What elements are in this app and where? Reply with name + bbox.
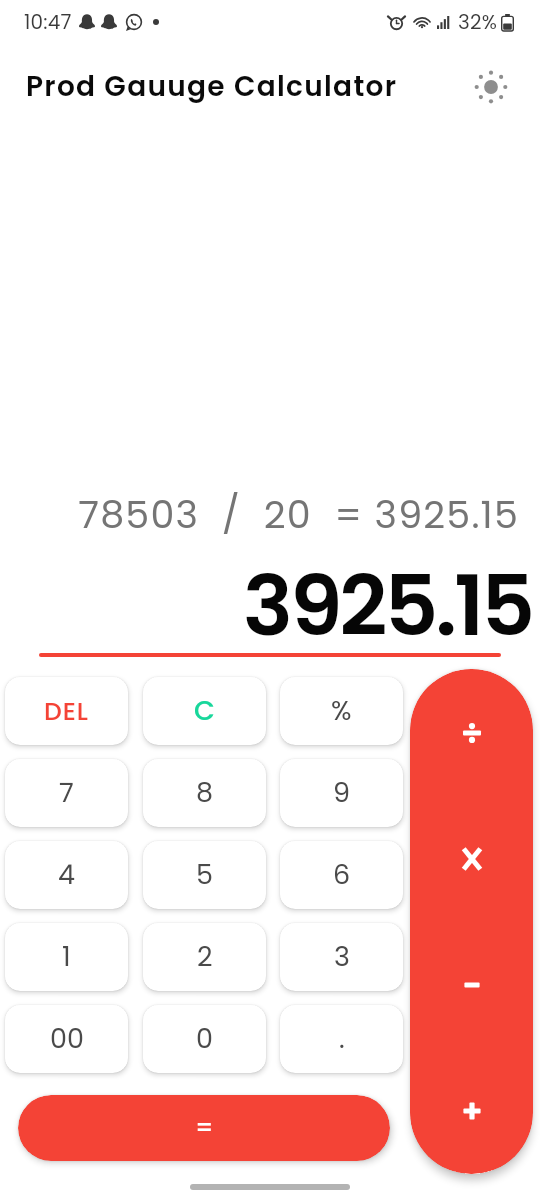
staticText: % [331,692,352,730]
staticText: 1 [62,938,71,976]
button[interactable]: . [280,1005,403,1073]
staticText: . [339,1020,345,1058]
staticText: 00 [50,1020,84,1058]
staticText: 3925.15 [0,547,532,665]
button[interactable]: Divide [410,669,533,796]
staticText: Prod Gauuge Calculator [26,67,398,106]
button[interactable]: 5 [143,841,266,909]
button[interactable]: Add [410,1048,533,1174]
staticText: 9 [333,774,351,812]
button[interactable]: Multiply [410,796,533,922]
staticText: 6 [333,856,351,894]
button[interactable]: 7 [5,759,128,827]
staticText: = [195,1111,214,1145]
staticText: 7 [59,774,74,812]
staticText: 8 [196,774,214,812]
button[interactable]: 4 [5,841,128,909]
staticText: 2 [197,938,213,976]
staticText: C [194,692,215,730]
staticText: 3 [334,938,350,976]
staticText: 78503 / 20 = 3925.15 [0,488,519,541]
button[interactable]: 9 [280,759,403,827]
button[interactable]: 6 [280,841,403,909]
staticText: 0 [196,1020,213,1058]
button[interactable]: DEL [5,677,128,745]
button[interactable]: 3 [280,923,403,991]
staticText: 10:47 [24,8,72,36]
button[interactable]: 0 [143,1005,266,1073]
staticText: 4 [58,856,75,894]
button[interactable]: 1 [5,923,128,991]
staticText: 5 [196,856,213,894]
staticText: 32% [458,8,498,36]
button[interactable]: Subtract [410,922,533,1048]
button[interactable]: 2 [143,923,266,991]
staticText: DEL [44,694,89,729]
button[interactable]: % [280,677,403,745]
button[interactable]: C [143,677,266,745]
button[interactable]: = [18,1095,390,1161]
button[interactable]: 8 [143,759,266,827]
button[interactable]: Toggle theme brightness [467,65,515,109]
button[interactable]: 00 [5,1005,128,1073]
